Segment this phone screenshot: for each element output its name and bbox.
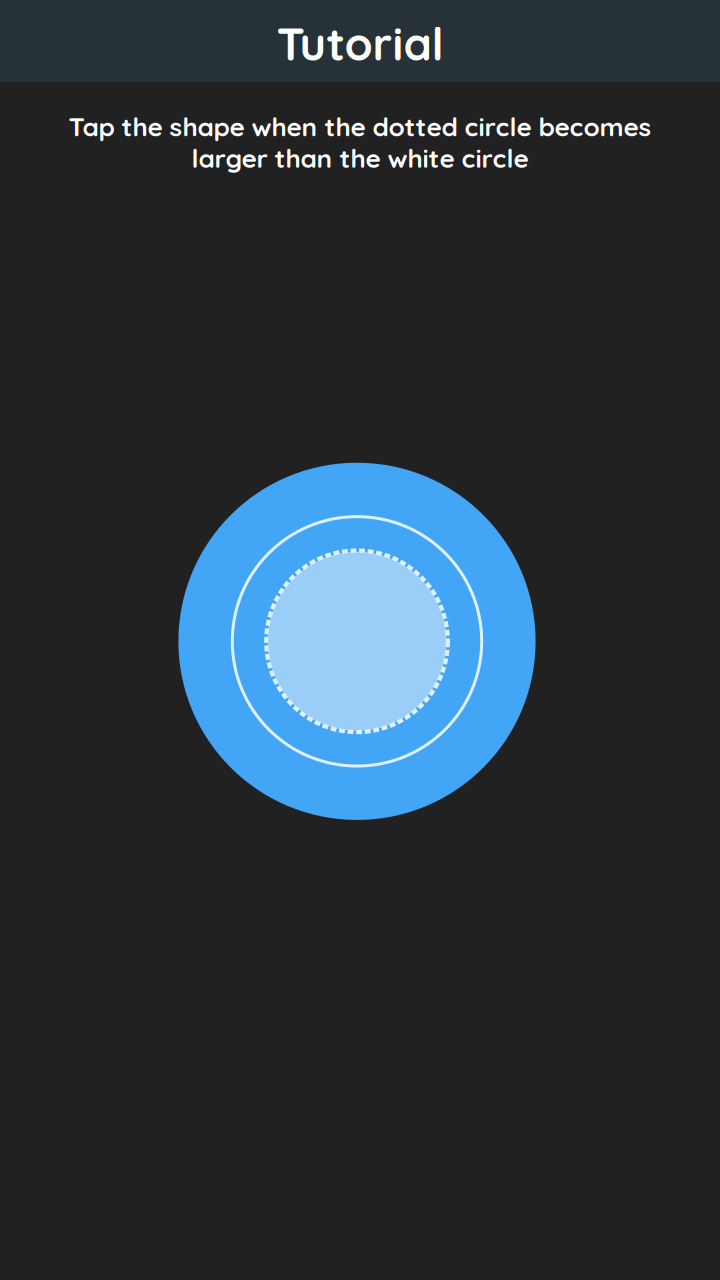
staticText: larger than the white circle	[191, 142, 528, 174]
staticText: Tap the shape when the dotted circle bec…	[68, 110, 651, 143]
button[interactable]: Tap the shape	[178, 462, 536, 820]
staticText: Tutorial	[276, 15, 443, 72]
